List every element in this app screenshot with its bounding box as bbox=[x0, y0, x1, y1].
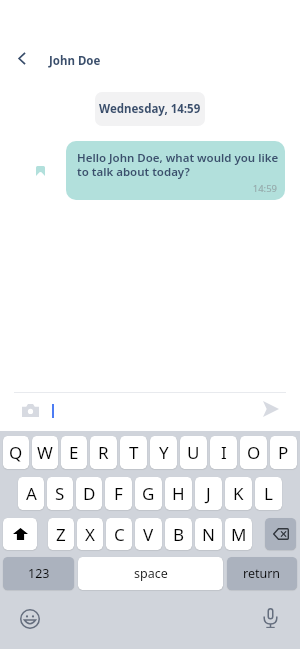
button[interactable]: Emoji bbox=[17, 606, 43, 632]
staticText: E bbox=[69, 441, 79, 464]
staticText: Wednesday, 14:59 bbox=[99, 101, 201, 117]
button[interactable]: Send bbox=[257, 395, 285, 423]
staticText: V bbox=[143, 523, 154, 546]
staticText: return bbox=[243, 565, 281, 582]
button[interactable]: P bbox=[270, 436, 297, 469]
button[interactable]: L bbox=[255, 477, 282, 510]
button[interactable]: U bbox=[180, 436, 207, 469]
staticText: Hello John Doe, what would you like to t… bbox=[77, 150, 279, 179]
button[interactable]: O bbox=[240, 436, 267, 469]
button[interactable]: Backspace bbox=[265, 518, 296, 550]
staticText: N bbox=[202, 523, 215, 546]
button[interactable]: N bbox=[195, 518, 222, 550]
button[interactable]: I bbox=[210, 436, 237, 469]
staticText: H bbox=[172, 482, 185, 505]
staticText: Q bbox=[9, 441, 23, 464]
staticText: W bbox=[37, 441, 53, 464]
button[interactable]: Camera bbox=[16, 396, 44, 424]
button[interactable]: V bbox=[135, 518, 162, 550]
button[interactable]: Microphone bbox=[257, 605, 283, 631]
staticText: 14:59 bbox=[66, 182, 277, 195]
button[interactable]: Back bbox=[9, 45, 35, 71]
button[interactable]: return bbox=[227, 557, 297, 590]
button[interactable]: G bbox=[135, 477, 162, 510]
button[interactable]: E bbox=[61, 436, 87, 469]
button[interactable]: space bbox=[78, 557, 223, 590]
staticText: M bbox=[231, 523, 247, 546]
button[interactable]: W bbox=[32, 436, 58, 469]
button[interactable]: K bbox=[225, 477, 252, 510]
button[interactable]: D bbox=[76, 477, 102, 510]
staticText: K bbox=[233, 482, 244, 505]
button[interactable]: T bbox=[120, 436, 147, 469]
staticText: J bbox=[206, 482, 211, 505]
button[interactable]: B bbox=[165, 518, 192, 550]
staticText: P bbox=[278, 441, 289, 464]
button[interactable]: 123 bbox=[3, 557, 74, 590]
button[interactable]: C bbox=[106, 518, 132, 550]
staticText: G bbox=[142, 482, 155, 505]
staticText: O bbox=[247, 441, 261, 464]
staticText: R bbox=[98, 441, 109, 464]
button[interactable]: Q bbox=[3, 436, 29, 469]
staticText: F bbox=[114, 482, 123, 505]
button[interactable]: M bbox=[225, 518, 252, 550]
staticText: 123 bbox=[28, 565, 50, 582]
button[interactable]: Y bbox=[150, 436, 177, 469]
staticText: I bbox=[221, 441, 227, 464]
staticText: A bbox=[26, 482, 37, 505]
staticText: S bbox=[55, 482, 65, 505]
button[interactable]: J bbox=[195, 477, 222, 510]
staticText: U bbox=[187, 441, 200, 464]
staticText: space bbox=[134, 565, 168, 582]
staticText: C bbox=[114, 523, 125, 546]
staticText: John Doe bbox=[49, 53, 101, 69]
button[interactable]: Shift bbox=[3, 518, 37, 550]
staticText: T bbox=[129, 441, 139, 464]
staticText: B bbox=[173, 523, 185, 546]
button[interactable]: X bbox=[77, 518, 103, 550]
button[interactable]: F bbox=[105, 477, 132, 510]
staticText: X bbox=[85, 523, 95, 546]
staticText: Y bbox=[159, 441, 169, 464]
staticText: D bbox=[83, 482, 96, 505]
staticText: L bbox=[264, 482, 273, 505]
button[interactable]: A bbox=[18, 477, 44, 510]
button[interactable]: Z bbox=[48, 518, 74, 550]
button[interactable]: H bbox=[165, 477, 192, 510]
staticText: Z bbox=[56, 523, 66, 546]
button[interactable]: R bbox=[90, 436, 117, 469]
button[interactable]: S bbox=[47, 477, 73, 510]
